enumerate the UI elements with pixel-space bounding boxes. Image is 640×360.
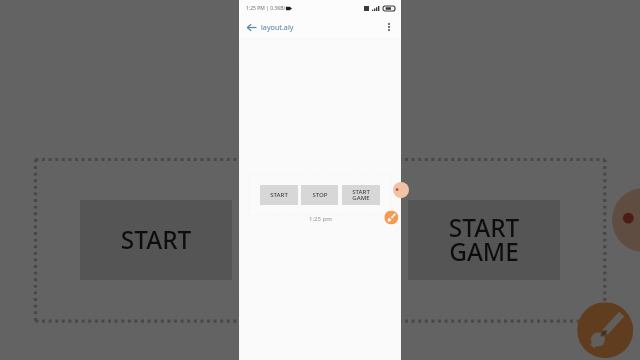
staticText: 1:25 pm bbox=[309, 215, 332, 223]
button[interactable]: STOP bbox=[301, 185, 338, 205]
button[interactable]: More options bbox=[382, 20, 396, 34]
staticText: START GAME bbox=[448, 209, 520, 269]
staticText: layout.aly bbox=[261, 22, 294, 32]
staticText: STOP bbox=[312, 190, 328, 198]
button[interactable]: Back bbox=[243, 19, 259, 35]
staticText: 1:25 PM | 0.3KB/s bbox=[246, 5, 288, 12]
staticText: START bbox=[120, 221, 192, 253]
button[interactable]: Record bbox=[612, 188, 640, 252]
button[interactable]: START GAME bbox=[408, 200, 560, 280]
button[interactable]: START bbox=[260, 185, 298, 205]
staticText: START bbox=[270, 190, 288, 198]
button[interactable]: Record bbox=[393, 182, 409, 198]
button[interactable]: STOP bbox=[244, 200, 392, 280]
button[interactable]: Brush bbox=[384, 211, 398, 225]
button[interactable]: START bbox=[80, 200, 232, 280]
staticText: START GAME bbox=[352, 187, 370, 202]
button[interactable]: START GAME bbox=[342, 185, 380, 205]
button[interactable]: Brush bbox=[577, 302, 633, 358]
